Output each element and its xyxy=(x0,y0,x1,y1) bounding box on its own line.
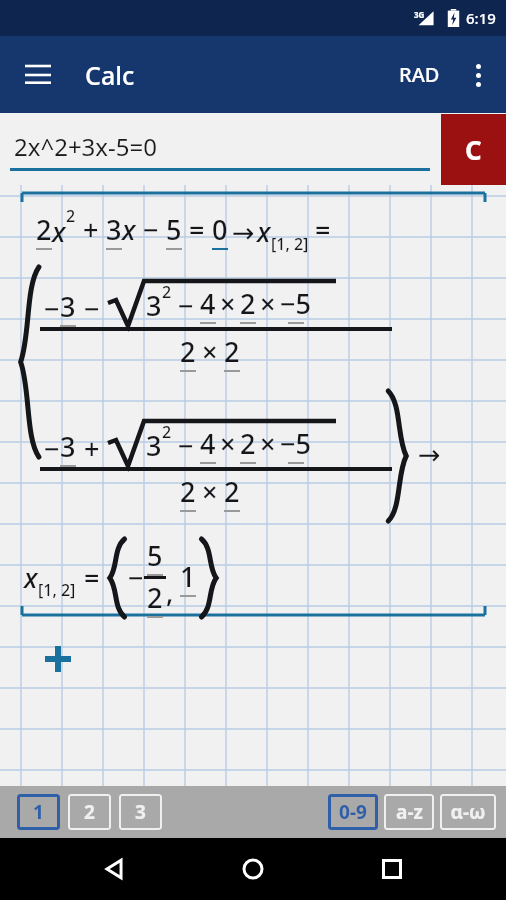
staticText: × xyxy=(202,473,218,510)
staticText: 3 xyxy=(60,428,76,465)
staticText: −5 xyxy=(280,285,311,322)
staticText: = xyxy=(315,211,331,248)
staticText: × xyxy=(260,425,276,462)
staticText: Calc xyxy=(85,58,135,92)
staticText: [1, 2] xyxy=(271,233,309,255)
button[interactable]: 1 xyxy=(17,794,60,830)
staticText: RAD xyxy=(399,61,440,88)
staticText: 5 xyxy=(166,211,182,248)
staticText: − xyxy=(178,287,194,324)
staticText: − xyxy=(178,427,194,464)
staticText: x xyxy=(122,211,136,248)
staticText: −5 xyxy=(280,425,311,462)
staticText: 2 xyxy=(224,473,240,510)
staticText: [1, 2] xyxy=(38,579,76,601)
staticText: C xyxy=(465,132,482,167)
staticText: 3G xyxy=(414,9,425,20)
staticText: 3 xyxy=(146,287,162,324)
button[interactable]: Add new line xyxy=(36,637,80,681)
staticText: x xyxy=(24,559,38,596)
staticText: 2 xyxy=(66,205,76,227)
button[interactable]: 2 xyxy=(68,794,111,830)
staticText: × xyxy=(202,333,218,370)
staticText: × xyxy=(260,285,276,322)
button[interactable]: 0-9 xyxy=(328,794,378,830)
staticText: 2 xyxy=(147,579,163,616)
staticText: 0 xyxy=(212,211,228,248)
staticText: 3 xyxy=(146,427,162,464)
staticText: 3 xyxy=(135,799,146,825)
staticText: 3 xyxy=(60,288,76,325)
staticText: × xyxy=(220,425,236,462)
staticText: 1 xyxy=(180,558,196,595)
staticText: 2 xyxy=(36,211,52,248)
button[interactable]: a-z xyxy=(384,794,434,830)
button[interactable]: More options xyxy=(452,49,504,101)
staticText: 1 xyxy=(33,799,44,825)
staticText: → xyxy=(418,439,441,470)
staticText: 0-9 xyxy=(339,799,367,825)
staticText: 2 xyxy=(224,333,240,370)
staticText: − xyxy=(44,430,60,467)
staticText: α-ω xyxy=(450,799,486,825)
staticText: − xyxy=(84,290,100,327)
staticText: 2 xyxy=(162,281,172,303)
staticText: → xyxy=(232,217,255,248)
button[interactable]: Open navigation drawer xyxy=(10,47,66,103)
staticText: + xyxy=(83,211,99,248)
staticText: + xyxy=(84,430,100,467)
staticText: 4 xyxy=(200,285,216,322)
staticText: − xyxy=(128,559,144,596)
button[interactable]: Home xyxy=(229,845,277,893)
staticText: x xyxy=(52,213,66,250)
staticText: 2 xyxy=(240,425,256,462)
staticText: − xyxy=(143,211,159,248)
staticText: 5 xyxy=(147,537,163,574)
staticText: 6:19 xyxy=(466,8,496,28)
button[interactable]: RAD xyxy=(391,51,448,98)
staticText: 2x^2+3x-5=0 xyxy=(14,130,157,163)
staticText: 3 xyxy=(106,211,122,248)
button[interactable]: Recent apps xyxy=(368,845,416,893)
button[interactable]: C xyxy=(441,114,506,185)
staticText: = xyxy=(84,559,100,596)
staticText: 2 xyxy=(162,421,172,443)
staticText: 2 xyxy=(84,799,95,825)
staticText: 4 xyxy=(200,425,216,462)
staticText: , xyxy=(166,573,174,610)
staticText: x xyxy=(257,213,271,250)
staticText: 2 xyxy=(240,285,256,322)
staticText: 2 xyxy=(180,473,196,510)
button[interactable]: Back xyxy=(90,845,138,893)
staticText: 2 xyxy=(180,333,196,370)
button[interactable]: α-ω xyxy=(440,794,496,830)
staticText: × xyxy=(220,285,236,322)
staticText: − xyxy=(44,290,60,327)
staticText: a-z xyxy=(396,799,423,825)
button[interactable]: 3 xyxy=(119,794,162,830)
staticText: = xyxy=(189,211,205,248)
